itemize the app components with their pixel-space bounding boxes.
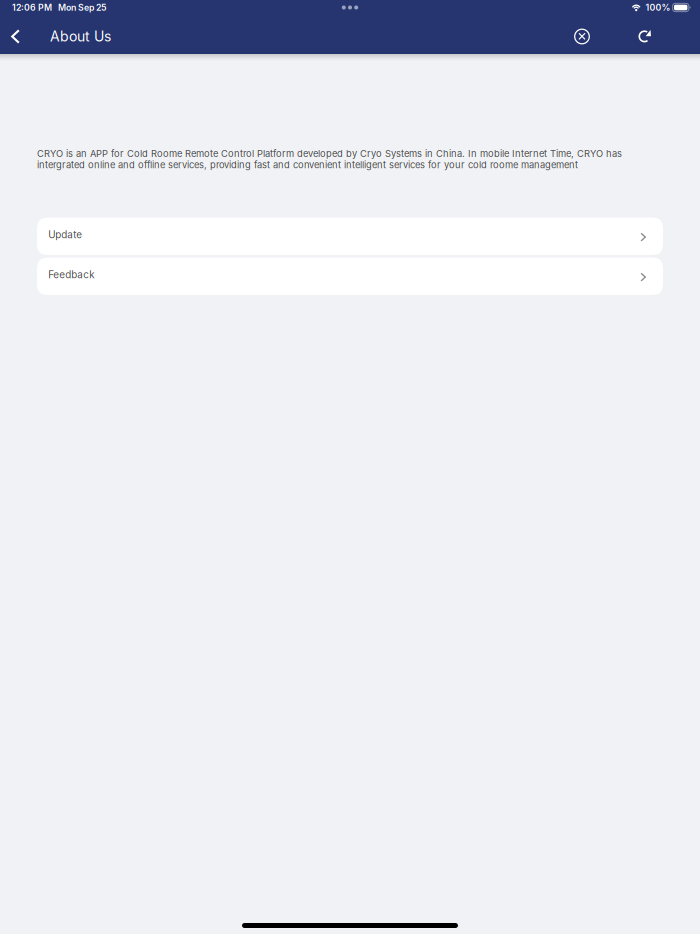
button[interactable]: Update	[37, 218, 663, 255]
staticText: Feedback	[48, 269, 94, 281]
staticText: CRYO is an APP for Cold Roome Remote Con…	[37, 148, 622, 171]
button[interactable]: Close	[563, 19, 601, 53]
button[interactable]: Refresh	[626, 19, 664, 53]
button[interactable]: Back	[0, 19, 31, 53]
staticText: 12:06 PM	[12, 2, 52, 13]
staticText: About Us	[50, 28, 111, 45]
button[interactable]: Feedback	[37, 258, 663, 295]
staticText: 100%	[646, 2, 671, 13]
staticText: Update	[48, 229, 82, 241]
staticText: Mon Sep 25	[58, 2, 107, 13]
